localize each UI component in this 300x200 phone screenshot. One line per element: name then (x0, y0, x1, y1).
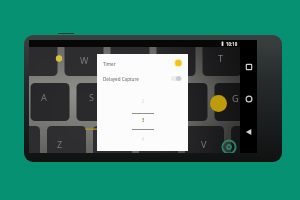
button[interactable]: Shutter (210, 95, 227, 112)
staticText: S (89, 91, 94, 103)
staticText: V (201, 138, 207, 150)
staticText: Z (57, 138, 63, 150)
button[interactable]: Recent apps (243, 61, 255, 73)
staticText: T (218, 52, 224, 64)
button[interactable]: Camera settings (221, 139, 237, 153)
button[interactable]: Timer (97, 55, 188, 74)
button[interactable]: Delayed Capture (97, 74, 188, 90)
staticText: 3 (132, 117, 154, 123)
button[interactable]: Home (243, 93, 255, 105)
staticText: A (41, 91, 47, 103)
staticText: Delayed Capture (103, 76, 139, 82)
staticText: 2 (132, 98, 154, 104)
staticText: Timer (103, 61, 116, 67)
staticText: G (232, 92, 239, 104)
staticText: 4 (132, 136, 154, 142)
staticText: 10:10 (226, 41, 238, 47)
staticText: W (80, 54, 89, 66)
button[interactable]: Back (243, 126, 255, 138)
